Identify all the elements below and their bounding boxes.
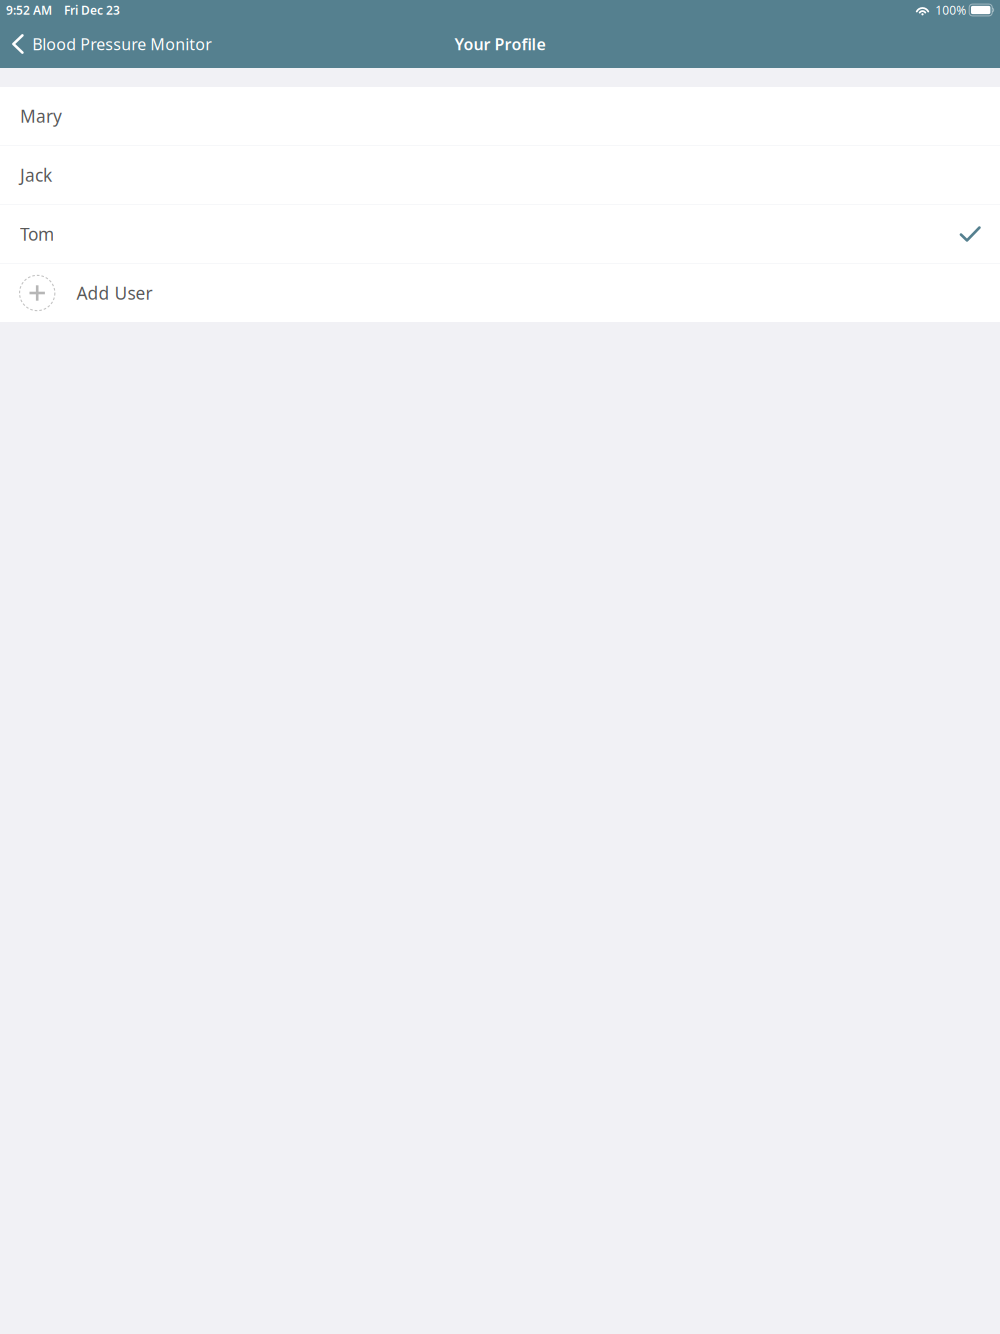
staticText: Jack: [20, 163, 52, 186]
staticText: Add User: [76, 281, 152, 304]
staticText: Your Profile: [454, 33, 545, 55]
button[interactable]: Back to Blood Pressure Monitor: [0, 25, 222, 63]
button[interactable]: Tom: [0, 205, 1000, 263]
staticText: Blood Pressure Monitor: [32, 33, 212, 55]
staticText: 9:52 AM: [6, 2, 52, 18]
button[interactable]: Mary: [0, 87, 1000, 145]
staticText: 100%: [935, 2, 966, 18]
button[interactable]: Jack: [0, 146, 1000, 204]
staticText: Mary: [20, 104, 62, 127]
staticText: Tom: [20, 222, 54, 245]
staticText: Fri Dec 23: [64, 2, 120, 18]
button[interactable]: Add User: [0, 264, 1000, 322]
